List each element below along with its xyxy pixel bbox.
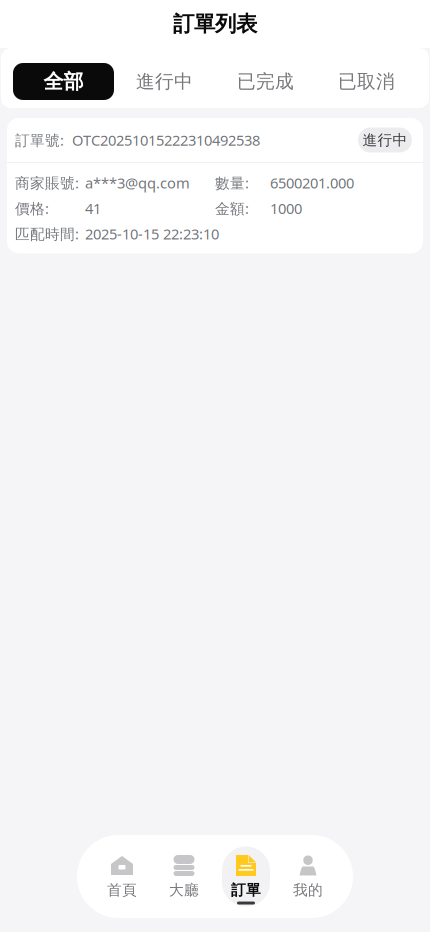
button[interactable]: 大廳 <box>153 842 215 910</box>
staticText: 訂單號: <box>15 130 64 150</box>
staticText: 訂單 <box>231 881 261 899</box>
staticText: OTC20251015222310492538 <box>72 130 260 150</box>
staticText: 已完成 <box>237 70 294 93</box>
staticText: 金額: <box>215 198 249 218</box>
staticText: 匹配時間: <box>15 224 79 243</box>
staticText: 2025-10-15 22:23:10 <box>85 224 219 243</box>
staticText: 全部 <box>43 69 83 94</box>
button[interactable]: 已取消 <box>316 63 417 100</box>
button[interactable]: 全部 <box>13 63 114 100</box>
staticText: 商家賬號: <box>15 173 79 192</box>
staticText: 41 <box>85 198 101 218</box>
button[interactable]: 首頁 <box>91 842 153 910</box>
staticText: 1000 <box>270 198 302 218</box>
staticText: 進行中 <box>362 131 407 149</box>
staticText: 價格: <box>15 198 49 218</box>
staticText: 我的 <box>293 881 323 899</box>
button[interactable]: 訂單 <box>215 842 277 910</box>
staticText: 進行中 <box>136 70 193 93</box>
button[interactable]: 進行中 <box>114 63 215 100</box>
staticText: 數量: <box>215 173 249 192</box>
staticText: a***3@qq.com <box>85 173 190 192</box>
button[interactable]: 我的 <box>277 842 339 910</box>
staticText: 首頁 <box>107 881 137 899</box>
staticText: 已取消 <box>338 70 395 93</box>
staticText: 6500201.000 <box>270 173 354 192</box>
button[interactable]: 已完成 <box>215 63 316 100</box>
staticText: 大廳 <box>169 881 199 899</box>
staticText: 訂單列表 <box>173 11 257 37</box>
